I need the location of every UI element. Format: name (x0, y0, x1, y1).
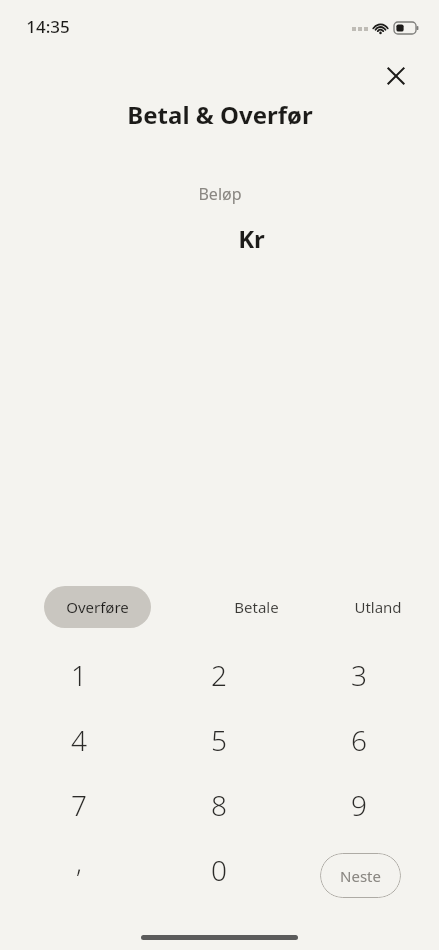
button[interactable]: 3 (327, 643, 391, 707)
button[interactable]: 7 (47, 773, 111, 837)
button[interactable]: 4 (47, 708, 111, 772)
staticText: 5 (211, 721, 227, 759)
button[interactable]: 0 (187, 838, 251, 902)
staticText: Beløp (198, 183, 242, 205)
staticText: Utland (354, 597, 402, 617)
button[interactable]: 9 (327, 773, 391, 837)
staticText: Betale (234, 597, 279, 617)
button[interactable]: Utland (317, 586, 439, 628)
button[interactable]: Neste (320, 853, 401, 898)
staticText: 14:35 (26, 15, 70, 38)
staticText: Kr (238, 222, 265, 254)
staticText: Overføre (66, 597, 129, 617)
staticText: 9 (351, 786, 367, 824)
staticText: 1 (71, 656, 87, 694)
staticText: 6 (351, 721, 367, 759)
button[interactable]: Close (376, 56, 416, 96)
staticText: 0 (211, 851, 227, 889)
button[interactable]: , (47, 838, 111, 902)
button[interactable]: Betale (196, 586, 317, 628)
button[interactable]: 1 (47, 643, 111, 707)
button[interactable]: Overføre (44, 586, 151, 628)
button[interactable]: 5 (187, 708, 251, 772)
staticText: 2 (211, 656, 227, 694)
staticText: 8 (211, 786, 227, 824)
staticText: 3 (351, 656, 367, 694)
staticText: Betal & Overfør (127, 98, 313, 130)
button[interactable]: 2 (187, 643, 251, 707)
staticText: 7 (71, 786, 87, 824)
staticText: Neste (340, 866, 381, 886)
button[interactable]: 8 (187, 773, 251, 837)
staticText: 4 (71, 721, 87, 759)
staticText: , (76, 845, 82, 880)
button[interactable]: 6 (327, 708, 391, 772)
